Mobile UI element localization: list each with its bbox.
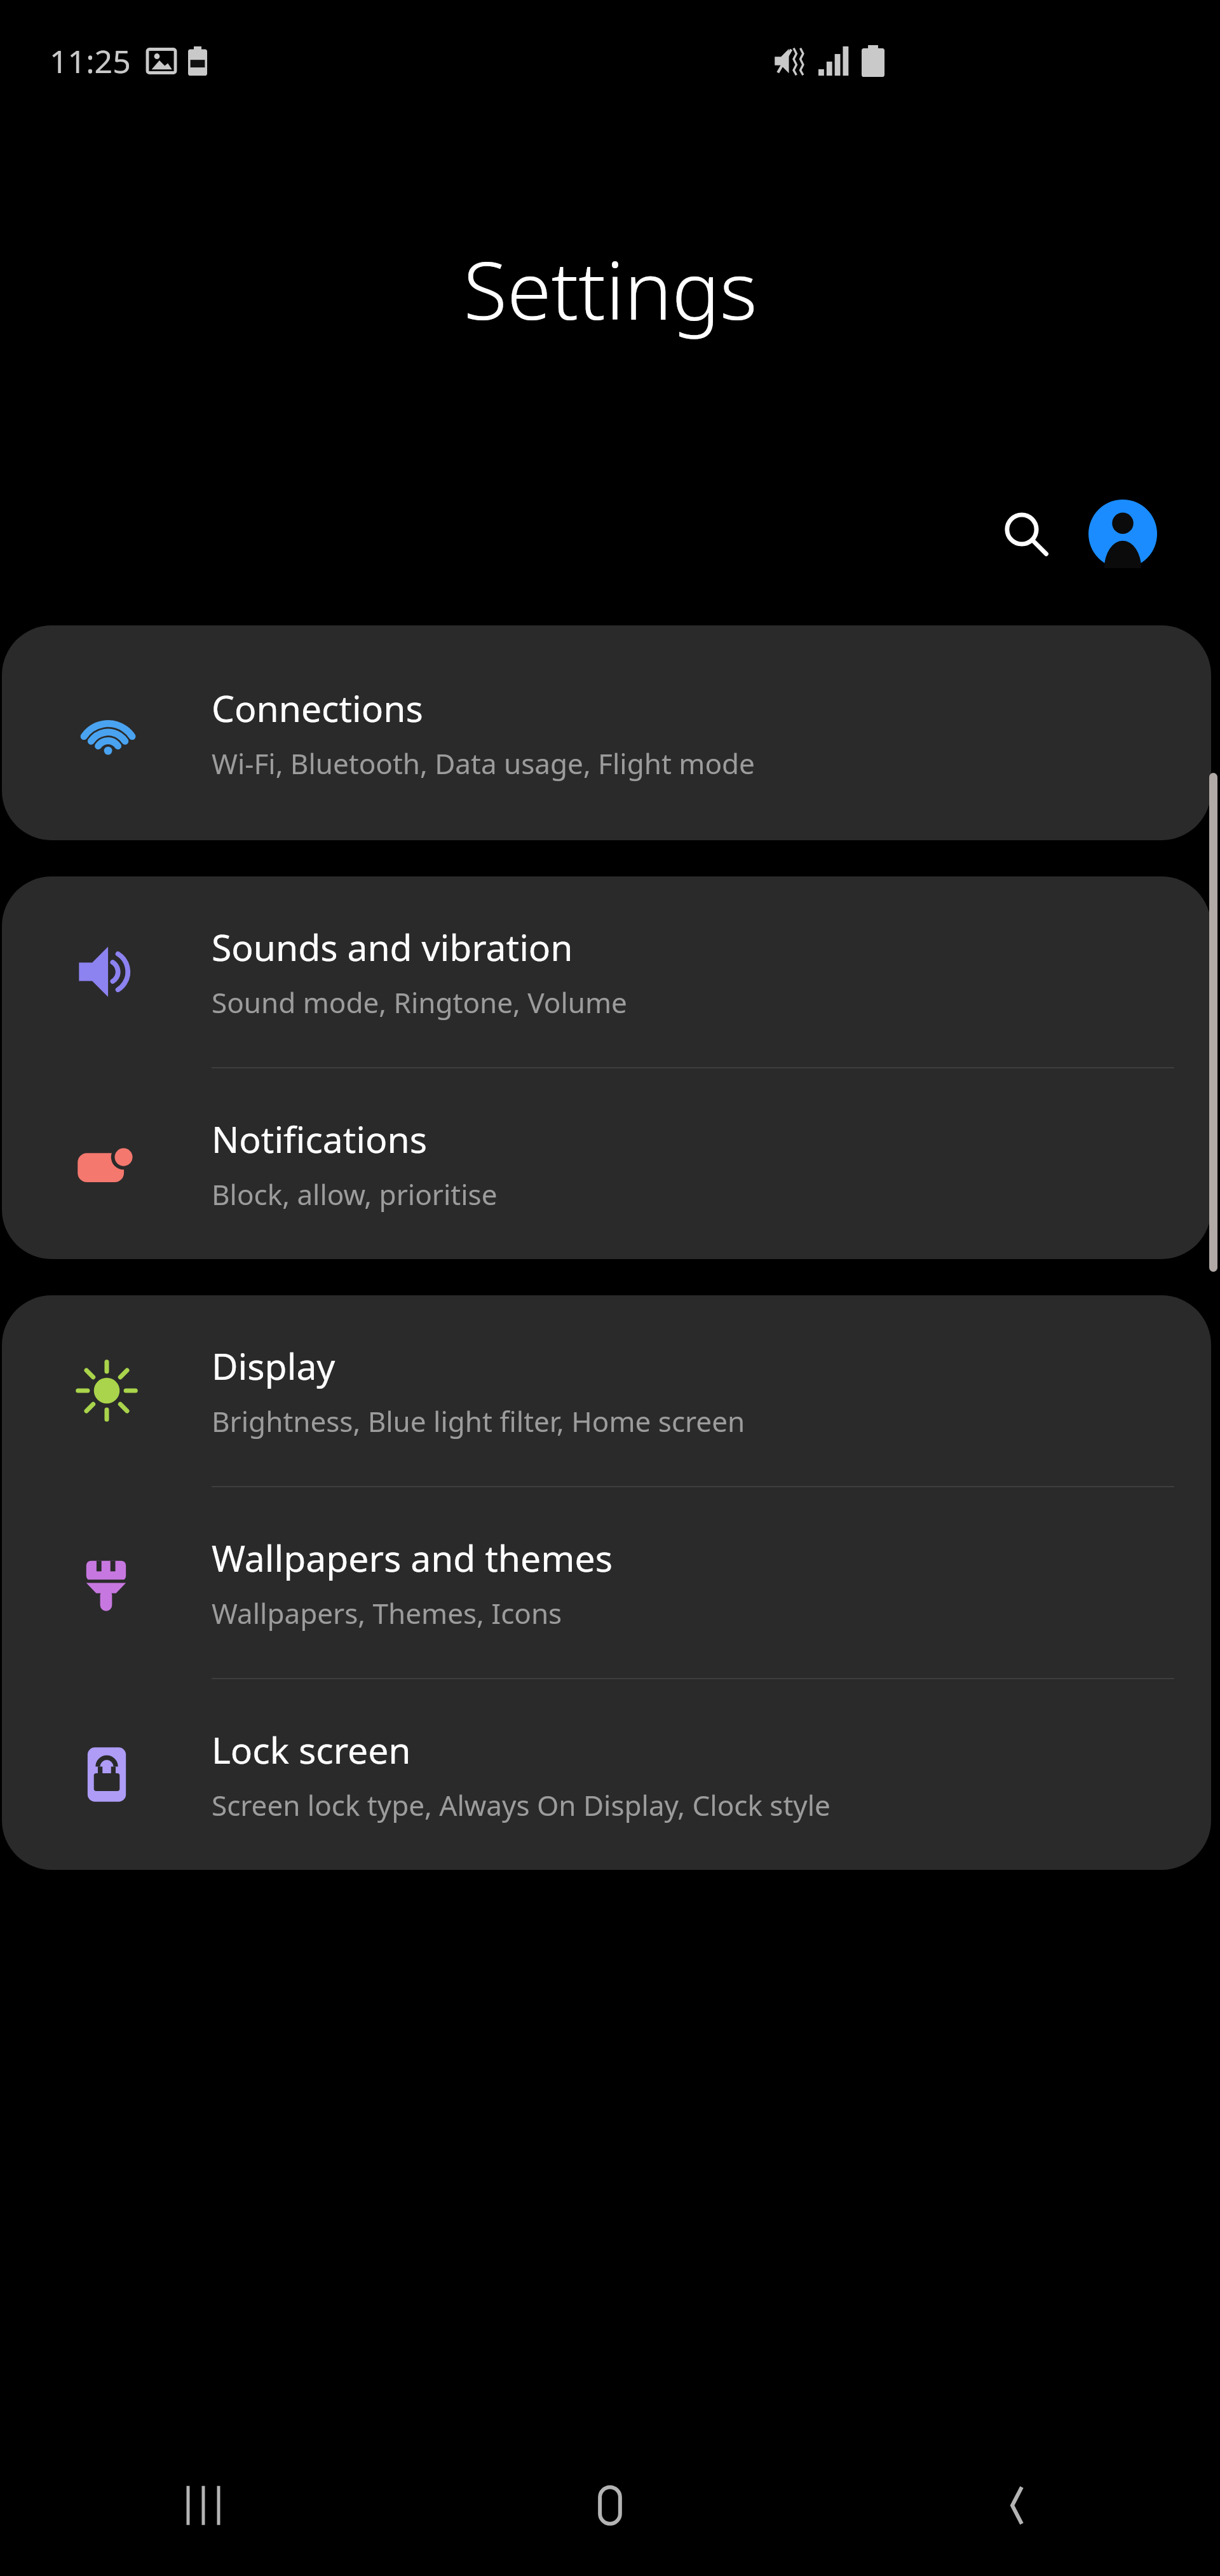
button[interactable]: Connections (2, 625, 1211, 840)
button[interactable]: Notifications (2, 1068, 1211, 1259)
staticText: Sound mode, Ringtone, Volume (212, 983, 627, 1021)
button[interactable]: Recent apps (0, 2434, 407, 2576)
button[interactable]: Back (813, 2434, 1220, 2576)
staticText: Block, allow, prioritise (212, 1175, 498, 1213)
staticText: Screen lock type, Always On Display, Clo… (212, 1786, 830, 1824)
button[interactable]: Home (407, 2434, 813, 2576)
button[interactable]: Search (985, 493, 1067, 575)
staticText: Display (212, 1341, 335, 1391)
staticText: Connections (212, 683, 423, 733)
staticText: Wallpapers and themes (212, 1533, 613, 1583)
staticText: Brightness, Blue light filter, Home scre… (212, 1402, 745, 1440)
staticText: Notifications (212, 1114, 428, 1164)
staticText: Wi-Fi, Bluetooth, Data usage, Flight mod… (212, 744, 755, 782)
button[interactable]: Display (2, 1295, 1211, 1486)
button[interactable]: Account (1081, 493, 1164, 575)
staticText: Lock screen (212, 1725, 411, 1775)
staticText: Sounds and vibration (212, 922, 573, 972)
staticText: Settings (463, 234, 757, 343)
staticText: 11:25 (50, 39, 131, 83)
button[interactable]: Wallpapers and themes (2, 1487, 1211, 1678)
button[interactable]: Sounds and vibration (2, 876, 1211, 1067)
staticText: Wallpapers, Themes, Icons (212, 1594, 562, 1632)
button[interactable]: Lock screen (2, 1679, 1211, 1870)
